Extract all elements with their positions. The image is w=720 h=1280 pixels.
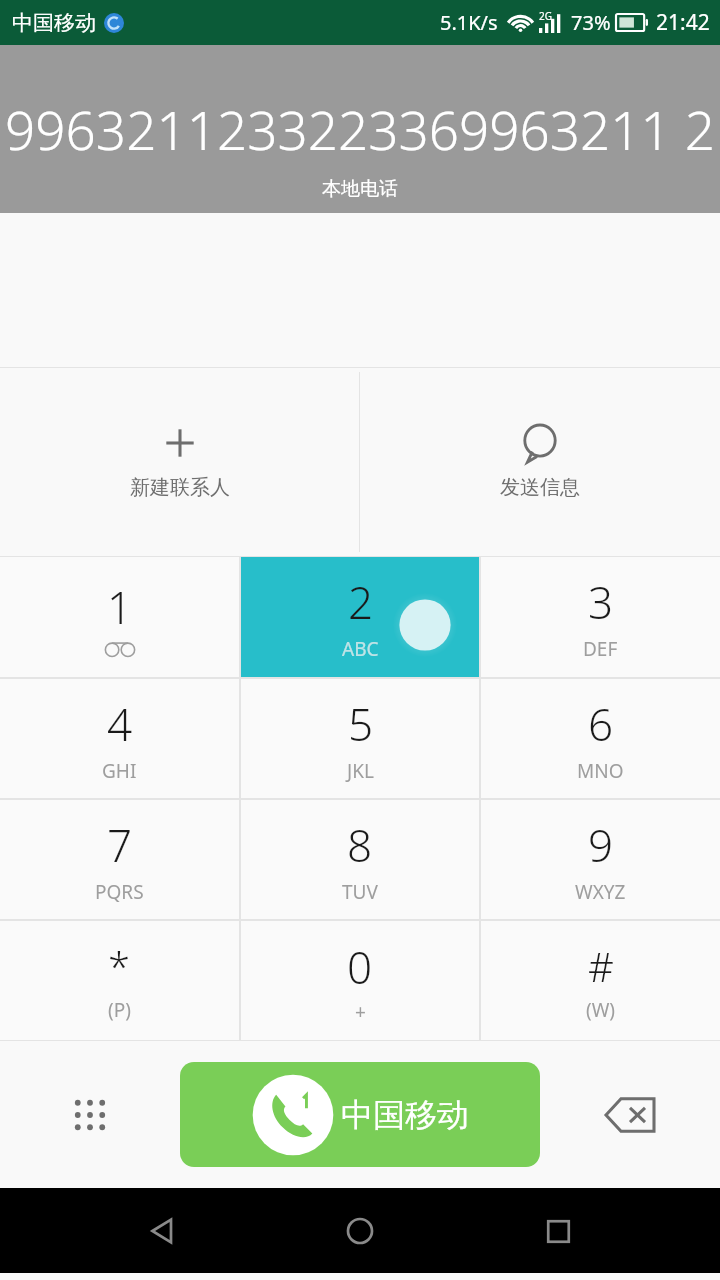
staticText: 中国移动 — [12, 10, 96, 36]
button[interactable]: Home — [324, 1195, 396, 1267]
staticText: 1 — [107, 577, 133, 637]
staticText: 8 — [347, 815, 373, 875]
staticText: 中国移动 — [341, 1095, 469, 1135]
staticText: 发送信息 — [500, 475, 580, 500]
button[interactable]: 2 — [241, 557, 479, 677]
staticText: 0 — [347, 937, 373, 997]
button[interactable]: Keypad — [52, 1077, 128, 1153]
staticText: (P) — [108, 997, 131, 1023]
staticText: (W) — [586, 997, 616, 1023]
staticText: 新建联系人 — [130, 475, 230, 500]
button[interactable]: 新建联系人 — [0, 368, 359, 556]
staticText: 5 — [348, 694, 374, 754]
staticText: PQRS — [95, 879, 144, 905]
staticText: JKL — [347, 758, 374, 784]
staticText: WXYZ — [575, 879, 626, 905]
button[interactable]: 4 — [0, 679, 239, 798]
button[interactable]: 发送信息 — [360, 368, 720, 556]
staticText: 73% — [571, 9, 611, 36]
staticText: ABC — [342, 636, 379, 662]
button[interactable]: Delete — [592, 1077, 668, 1153]
button[interactable]: Back — [126, 1195, 198, 1267]
button[interactable]: 3 — [481, 557, 720, 677]
staticText: 2 — [348, 572, 374, 632]
staticText: 5.1K/s — [440, 9, 498, 36]
button[interactable]: Recents — [522, 1195, 594, 1267]
staticText: 21:42 — [656, 8, 710, 37]
button[interactable]: 8 — [241, 800, 479, 919]
staticText: * — [108, 939, 131, 993]
staticText: # — [588, 939, 614, 993]
button[interactable]: 0 — [241, 921, 479, 1040]
staticText: 9 — [588, 815, 614, 875]
staticText: 6 — [588, 694, 614, 754]
staticText: 7 — [107, 815, 133, 875]
staticText: 本地电话 — [322, 177, 398, 201]
staticText: + — [355, 999, 366, 1025]
button[interactable]: 中国移动 — [180, 1062, 540, 1167]
staticText: GHI — [102, 758, 137, 784]
button[interactable]: 5 — [241, 679, 479, 798]
staticText: 3 — [588, 572, 614, 632]
staticText: TUV — [342, 879, 378, 905]
button[interactable]: 1 — [0, 557, 239, 677]
staticText: MNO — [577, 758, 624, 784]
button[interactable]: 6 — [481, 679, 720, 798]
button[interactable]: # — [481, 921, 720, 1040]
button[interactable]: 9 — [481, 800, 720, 919]
staticText: 2G — [539, 9, 552, 23]
staticText: DEF — [583, 636, 618, 662]
button[interactable]: 7 — [0, 800, 239, 919]
button[interactable]: * — [0, 921, 239, 1040]
staticText: 9963211233223369963211 2 — [5, 93, 715, 165]
staticText: 4 — [107, 694, 133, 754]
